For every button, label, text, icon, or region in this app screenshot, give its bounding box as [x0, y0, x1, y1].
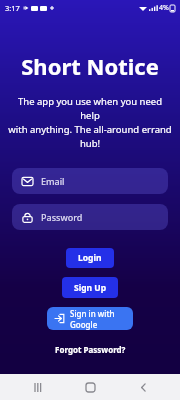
button[interactable]: Sign Up	[62, 277, 118, 298]
button[interactable]: Email	[12, 168, 168, 194]
staticText: 3:17	[5, 3, 20, 13]
staticText: Forgot Password?	[55, 344, 126, 355]
button[interactable]: Login	[66, 248, 114, 268]
staticText: Sign in with Google	[70, 308, 125, 330]
button[interactable]: Forgot Password?	[49, 342, 132, 357]
staticText: 4%	[159, 3, 169, 13]
staticText: Short Notice	[21, 51, 159, 81]
button[interactable]: Home	[75, 374, 105, 400]
staticText: The app you use when you need help with …	[8, 95, 172, 150]
other: Sign in with Google	[55, 314, 64, 323]
staticText: Password	[41, 211, 83, 223]
staticText: Login	[78, 252, 102, 264]
staticText: Email	[41, 175, 65, 187]
button[interactable]: Password	[12, 204, 168, 230]
button[interactable]: Back	[128, 374, 158, 400]
button[interactable]: Sign in with Google	[47, 307, 133, 330]
staticText: Sign Up	[74, 282, 107, 294]
button[interactable]: Recent apps	[23, 374, 53, 400]
